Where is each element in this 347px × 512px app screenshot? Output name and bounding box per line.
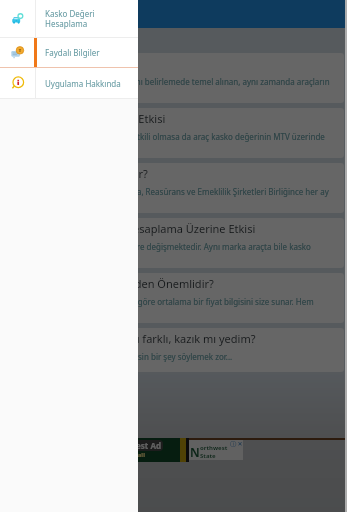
staticText: orthwest State <box>200 444 243 460</box>
other: Uygulama Hakkında <box>11 76 25 90</box>
staticText: Test Ad <box>132 440 161 451</box>
button[interactable]: Uygulama Hakkında <box>0 68 138 98</box>
staticText: ⓘ ✕ <box>230 440 243 448</box>
button[interactable]: Kasko Değer Listesi Nedir? <box>3 163 344 213</box>
staticText: Kasko değeri, araç piyasa fiyatına göre … <box>11 296 336 307</box>
staticText: Aldığım kasko teklif fiyatı farklı, kazı… <box>11 331 256 346</box>
staticText: Kasko Değerinin MTV'ye Etkisi <box>11 111 166 126</box>
button[interactable] <box>0 0 347 512</box>
button[interactable]: YOUR F <box>100 438 243 462</box>
other: Kasko Değeri Hesaplama <box>12 13 24 25</box>
staticText: Kasko değerleri araç modeline göre değiş… <box>11 241 336 252</box>
staticText: Faydalı Bilgiler <box>45 47 100 58</box>
staticText: MTV hesaplamasında doğrudan etkili olmas… <box>11 131 336 142</box>
staticText: Kasko Değeri Nedir? <box>11 56 116 71</box>
button[interactable]: Aldığım kasko teklif fiyatı farklı, kazı… <box>3 328 344 372</box>
button[interactable]: Faydalı Bilgiler <box>0 38 138 67</box>
button[interactable]: Kasko Değeri Nedir? <box>3 53 344 103</box>
staticText: Araç Modelinin Kasko Hesaplama Üzerine E… <box>11 221 256 236</box>
staticText: Kasko Değeri Hesaplama <box>45 8 95 29</box>
button[interactable]: Kasko Değeri Bilmek Neden Önemlidir? <box>3 273 344 323</box>
staticText: Sigorta şirketlerinin bu konuda kesin bi… <box>11 351 233 362</box>
staticText: summer or fall <box>101 451 145 459</box>
staticText: Kasko değer listesi, Türkiye Sigorta, Re… <box>11 186 329 197</box>
button[interactable]: Araç Modelinin Kasko Hesaplama Üzerine E… <box>3 218 344 268</box>
button[interactable]: Kasko Değerinin MTV'ye Etkisi <box>3 108 344 158</box>
staticText: Kasko değeri, aracın sigorta fiyatını be… <box>11 76 336 87</box>
other: Faydalı Bilgiler <box>11 46 25 60</box>
button[interactable]: Kasko Değeri Hesaplama <box>0 0 138 37</box>
staticText: Kasko Değeri Bilmek Neden Önemlidir? <box>11 276 214 291</box>
staticText: N <box>190 444 200 460</box>
staticText: Uygulama Hakkında <box>45 78 121 89</box>
staticText: Kasko Değer Listesi Nedir? <box>11 166 148 181</box>
